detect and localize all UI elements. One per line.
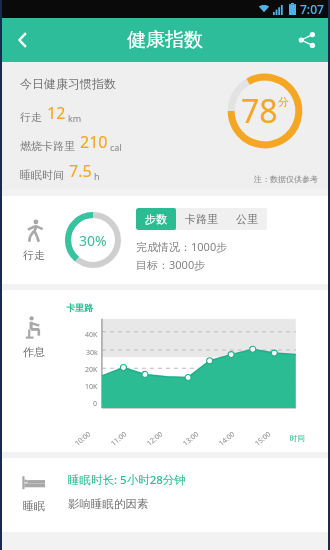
staticText: 影响睡眠的因素 <box>68 497 149 511</box>
staticText: 作息 <box>23 345 45 359</box>
staticText: h <box>94 170 100 182</box>
staticText: 78 <box>241 89 278 133</box>
button[interactable]: 作息 <box>0 290 330 452</box>
button[interactable]: 步数 <box>136 208 176 230</box>
button[interactable]: 睡眠 <box>0 458 330 532</box>
staticText: 14:00 <box>217 429 237 449</box>
staticText: 步数 <box>145 212 167 226</box>
staticText: 15:00 <box>253 429 273 449</box>
staticText: 行走 <box>23 248 45 262</box>
staticText: 20K <box>85 365 98 375</box>
staticText: 燃烧卡路里 <box>20 139 75 153</box>
staticText: 210 <box>80 131 108 153</box>
staticText: 今日健康习惯指数 <box>20 76 116 91</box>
staticText: 目标：3000步 <box>136 257 206 272</box>
button[interactable]: Back <box>0 18 46 62</box>
staticText: 卡路里 <box>185 212 218 226</box>
staticText: 注：数据仅供参考 <box>254 174 318 184</box>
staticText: 12 <box>47 102 66 124</box>
button[interactable]: 卡路里 <box>176 208 227 230</box>
staticText: 健康指数 <box>127 28 203 52</box>
staticText: 0 <box>93 399 98 409</box>
staticText: cal <box>110 141 122 153</box>
staticText: 7:07 <box>300 1 324 17</box>
staticText: 13:00 <box>181 429 201 449</box>
button[interactable]: 行走 <box>0 196 330 284</box>
staticText: 30k <box>86 348 98 358</box>
staticText: 睡眠 <box>23 499 45 513</box>
staticText: 卡里路 <box>66 302 93 313</box>
staticText: 7.5 <box>69 160 92 182</box>
staticText: 10K <box>85 382 98 392</box>
staticText: 公里 <box>236 212 258 226</box>
staticText: 12:00 <box>145 429 165 449</box>
staticText: 时间 <box>290 434 305 443</box>
staticText: km <box>68 112 82 124</box>
button[interactable]: 公里 <box>227 208 267 230</box>
staticText: 10:00 <box>73 429 93 449</box>
staticText: 完成情况：1000步 <box>136 239 228 254</box>
staticText: 分 <box>278 95 289 109</box>
staticText: 睡眠时间 <box>20 168 64 182</box>
button[interactable]: Share <box>284 18 330 62</box>
staticText: 11:00 <box>109 429 129 449</box>
staticText: 睡眠时长: 5小时28分钟 <box>68 472 186 488</box>
staticText: 30% <box>79 231 107 250</box>
staticText: 40K <box>85 330 98 340</box>
staticText: 行走 <box>20 110 42 124</box>
